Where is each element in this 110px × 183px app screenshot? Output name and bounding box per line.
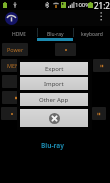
- button[interactable]: Remote key: [2, 75, 29, 88]
- button[interactable]: App icon: [5, 12, 18, 25]
- button[interactable]: Remote key: [63, 75, 90, 88]
- button[interactable]: Remote key: [63, 91, 90, 104]
- button[interactable]: Remote key: [48, 107, 69, 120]
- button[interactable]: Remote key: [70, 107, 90, 120]
- button[interactable]: Power: [2, 43, 28, 56]
- button[interactable]: Remote key: [1, 107, 22, 120]
- button[interactable]: Remote key: [55, 43, 76, 56]
- staticText: 100%: [75, 1, 91, 9]
- button[interactable]: keyboard: [73, 26, 110, 42]
- button[interactable]: Remote key: [92, 107, 106, 120]
- button[interactable]: Remote key: [63, 59, 90, 72]
- staticText: Import: [44, 80, 64, 88]
- button[interactable]: Remote key: [32, 75, 60, 88]
- staticText: MENU: [7, 62, 24, 69]
- button[interactable]: Remote key: [25, 107, 46, 120]
- button[interactable]: HDMI: [0, 26, 37, 42]
- staticText: keyboard: [81, 31, 103, 38]
- button[interactable]: More options: [96, 10, 110, 26]
- staticText: HDMI: [12, 31, 26, 38]
- button[interactable]: Other App: [20, 93, 88, 106]
- staticText: Export: [45, 65, 64, 73]
- button[interactable]: Import: [20, 77, 88, 90]
- button[interactable]: Close: [20, 109, 88, 127]
- staticText: Blu-ray: [41, 141, 64, 150]
- button[interactable]: Blu-ray: [37, 26, 73, 42]
- staticText: Other App: [39, 96, 69, 104]
- button[interactable]: Export: [20, 62, 88, 75]
- button[interactable]: Remote key: [32, 59, 60, 72]
- button[interactable]: MENU: [1, 59, 29, 72]
- button[interactable]: Remote key: [2, 91, 29, 104]
- staticText: Blu-ray: [47, 31, 64, 38]
- button[interactable]: Remote key: [32, 91, 60, 104]
- button[interactable]: Remote key: [93, 59, 110, 72]
- staticText: Power: [7, 46, 24, 53]
- staticText: 21:21: [94, 0, 110, 10]
